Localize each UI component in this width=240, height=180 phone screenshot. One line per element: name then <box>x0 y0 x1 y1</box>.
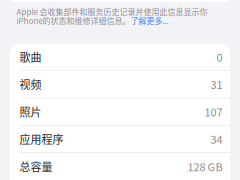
button[interactable]: 歌曲 <box>10 44 230 71</box>
staticText: 107 <box>204 104 222 119</box>
staticText: 总容量 <box>20 159 53 174</box>
staticText: 歌曲 <box>20 49 42 65</box>
staticText: 照片 <box>20 104 42 119</box>
staticText: 应用程序 <box>20 131 64 147</box>
staticText: 视频 <box>20 76 42 92</box>
button[interactable]: 视频 <box>10 71 230 98</box>
staticText: 0 <box>216 49 222 65</box>
staticText: 128 GB <box>187 159 222 174</box>
staticText: 34 <box>210 131 222 147</box>
staticText: 31 <box>210 76 222 92</box>
button[interactable]: 照片 <box>10 98 230 126</box>
staticText: 了解更多... <box>130 15 168 26</box>
button[interactable]: 应用程序 <box>10 126 230 153</box>
staticText: Apple 会收集部件和服务历史记录并使用此信息显示你 <box>16 6 207 17</box>
button[interactable]: 了解更多... <box>130 15 168 26</box>
button[interactable]: 总容量 <box>10 153 230 180</box>
staticText: iPhone的状态和维修详细信息。 <box>16 15 130 26</box>
